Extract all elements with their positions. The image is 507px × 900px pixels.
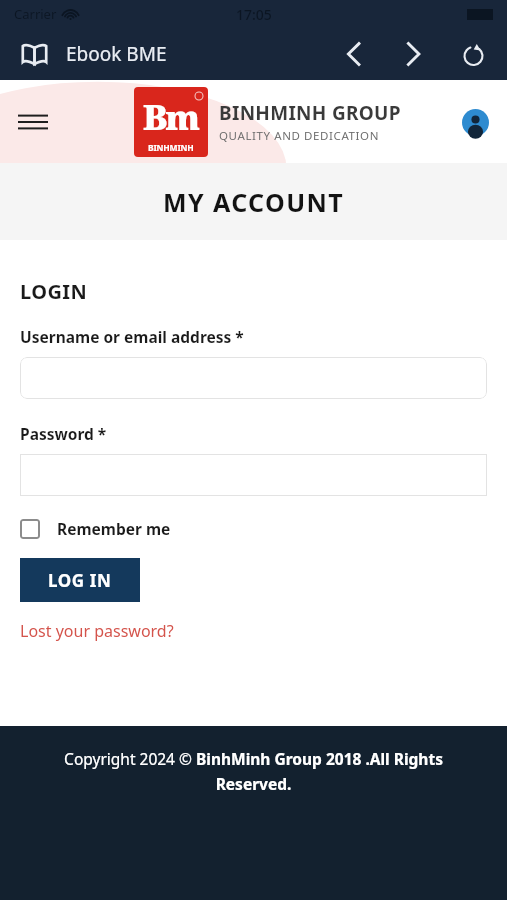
staticText: Ebook BME	[66, 41, 167, 67]
staticText: MY ACCOUNT	[163, 185, 345, 219]
button[interactable]: LOG IN	[20, 558, 140, 602]
button[interactable]: Reload	[451, 32, 495, 76]
staticText: Username or email address *	[20, 326, 244, 347]
staticText: 17:05	[236, 5, 272, 24]
button[interactable]: Account	[455, 102, 495, 142]
button[interactable]: Menu	[10, 99, 56, 145]
button[interactable]: Back	[331, 32, 375, 76]
staticText: Password *	[20, 423, 107, 444]
staticText: QUALITY AND DEDICATION	[219, 128, 380, 144]
button[interactable]	[20, 454, 487, 496]
staticText: Bm	[143, 94, 199, 140]
button[interactable]: Forward	[391, 32, 435, 76]
staticText: Carrier	[14, 5, 57, 23]
staticText: BINHMINH	[148, 142, 194, 154]
staticText: Copyright 2024 © BinhMinh Group 2018 .Al…	[30, 748, 477, 795]
button[interactable]: Lost your password?	[20, 620, 174, 642]
staticText: LOG IN	[48, 569, 112, 592]
staticText: BINHMINH GROUP	[219, 100, 401, 126]
staticText: LOGIN	[20, 278, 88, 305]
staticText: Remember me	[57, 518, 171, 539]
button[interactable]: Reader	[12, 32, 56, 76]
button[interactable]	[20, 357, 487, 399]
button[interactable]: Remember me	[20, 518, 171, 539]
